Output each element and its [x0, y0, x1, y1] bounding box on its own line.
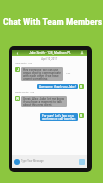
staticText: Jake Smith - 128, Madison Pl. [29, 51, 71, 55]
staticText: with each other if we have [23, 74, 59, 77]
staticText: Great. Also, Jake, let me know [23, 97, 65, 100]
button[interactable]: Add attachment [14, 159, 20, 165]
staticText: For sure! Let's hop on a [42, 114, 74, 117]
staticText: Jake Smith 1:02 [15, 62, 32, 65]
staticText: R [80, 85, 83, 89]
button[interactable]: Send [79, 159, 85, 165]
staticText: group chat to communicate [23, 71, 61, 74]
other: Contact [80, 51, 84, 55]
staticText: urgent something. [23, 77, 49, 80]
staticText: April 10, 2017 [40, 58, 59, 61]
staticText: Awesome, thank you Jake! [39, 85, 76, 88]
staticText: 1:03 [66, 72, 71, 75]
staticText: if you have a moment to talk [23, 100, 62, 103]
staticText: W [16, 97, 20, 101]
staticText: J [17, 68, 19, 72]
staticText: Type Your Message [21, 160, 44, 163]
button[interactable]: Back [12, 50, 87, 56]
other: Back [16, 52, 19, 55]
staticText: Hey everyone, we can use [23, 68, 59, 71]
staticText: conference call together. [42, 117, 76, 120]
staticText: R [80, 114, 83, 118]
staticText: Walter Porter 1:05 [15, 91, 35, 94]
staticText: Chat With Team Members [3, 16, 103, 27]
staticText: about this new client. [23, 103, 53, 106]
